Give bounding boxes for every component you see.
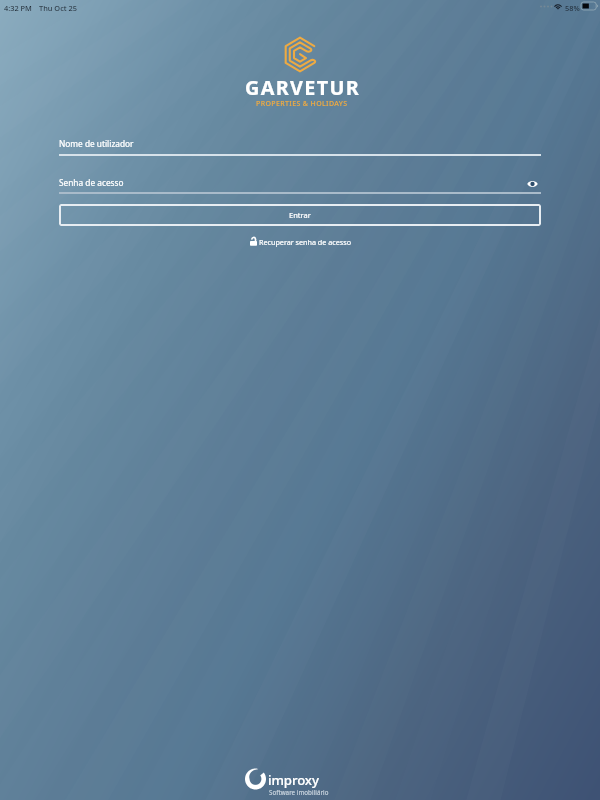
staticText: 4:32 PM — [4, 3, 32, 13]
staticText: Entrar — [289, 210, 311, 220]
staticText: PROPERTIES & HOLIDAYS — [256, 99, 348, 109]
button[interactable]: Recuperar senha de acesso — [250, 236, 351, 247]
button[interactable]: Show password — [524, 175, 541, 192]
button[interactable]: Entrar — [59, 204, 541, 226]
staticText: Software imobiliário — [269, 788, 329, 796]
staticText: Thu Oct 25 — [39, 3, 77, 13]
staticText: improxy — [268, 771, 319, 789]
button[interactable]: Nome de utilizador — [59, 132, 541, 156]
button[interactable]: Senha de acesso — [59, 170, 541, 194]
staticText: 58% — [565, 3, 580, 13]
staticText: Nome de utilizador — [59, 138, 134, 149]
staticText: Recuperar senha de acesso — [259, 237, 351, 247]
staticText: GARVETUR — [245, 74, 361, 101]
staticText: Senha de acesso — [59, 177, 124, 188]
